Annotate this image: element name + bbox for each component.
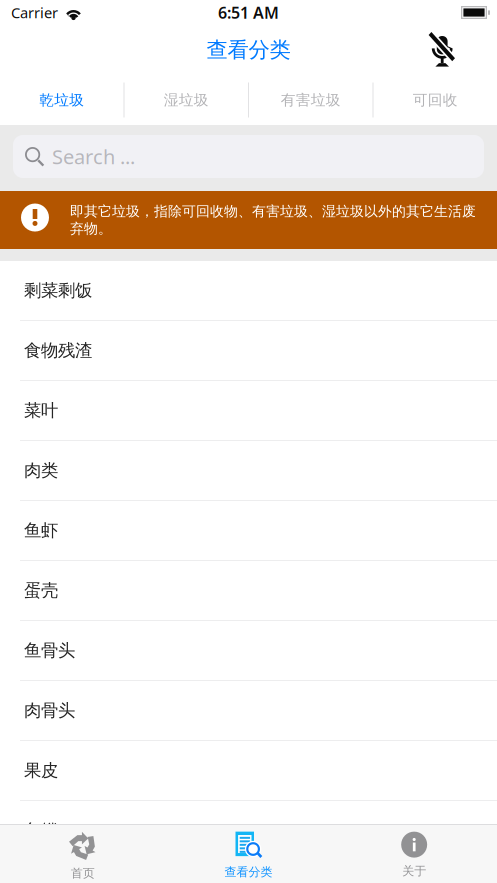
button[interactable]: 首页 <box>0 830 166 880</box>
staticText: Search ... <box>52 143 135 170</box>
button[interactable]: 果皮 <box>0 741 497 801</box>
staticText: 即其它垃圾，指除可回收物、有害垃圾、湿垃圾以外的其它生活废弃物。 <box>70 202 476 237</box>
staticText: Carrier <box>11 3 58 22</box>
button[interactable]: 有害垃圾 <box>249 75 372 125</box>
button[interactable]: 剩菜剩饭 <box>0 261 497 321</box>
staticText: 果皮 <box>24 760 58 781</box>
button[interactable]: 蛋壳 <box>0 561 497 621</box>
staticText: 首页 <box>71 866 95 881</box>
staticText: 6:51 AM <box>218 2 279 23</box>
staticText: 查看分类 <box>224 865 272 879</box>
button[interactable]: 鱼虾 <box>0 501 497 561</box>
button[interactable]: 鱼骨头 <box>0 621 497 681</box>
staticText: 食物残渣 <box>24 340 92 361</box>
button[interactable]: 食物残渣 <box>0 321 497 381</box>
staticText: 查看分类 <box>206 37 290 63</box>
button[interactable]: 关于 <box>331 830 497 880</box>
staticText: 鱼骨头 <box>24 640 75 661</box>
staticText: 乾垃圾 <box>39 91 84 109</box>
staticText: 蛋壳 <box>24 580 58 601</box>
button[interactable]: 鱼鳞 <box>0 801 497 861</box>
staticText: 湿垃圾 <box>164 91 209 109</box>
button[interactable]: 可回收 <box>373 75 497 125</box>
button[interactable]: 湿垃圾 <box>124 75 248 125</box>
staticText: 鱼鳞 <box>24 820 58 841</box>
staticText: 鱼虾 <box>24 520 58 541</box>
button[interactable]: 菜叶 <box>0 381 497 441</box>
staticText: 肉类 <box>24 460 58 481</box>
button[interactable]: 查看分类 <box>166 830 331 880</box>
button[interactable]: 肉骨头 <box>0 681 497 741</box>
button[interactable]: 肉类 <box>0 441 497 501</box>
button[interactable]: Microphone muted <box>418 28 462 72</box>
staticText: 可回收 <box>413 91 458 109</box>
staticText: 剩菜剩饭 <box>24 280 92 301</box>
staticText: 肉骨头 <box>24 700 75 721</box>
staticText: 菜叶 <box>24 400 58 421</box>
staticText: 有害垃圾 <box>281 91 341 109</box>
button[interactable]: 乾垃圾 <box>0 75 123 125</box>
staticText: 关于 <box>402 864 426 878</box>
button[interactable]: Search ... <box>13 135 484 178</box>
